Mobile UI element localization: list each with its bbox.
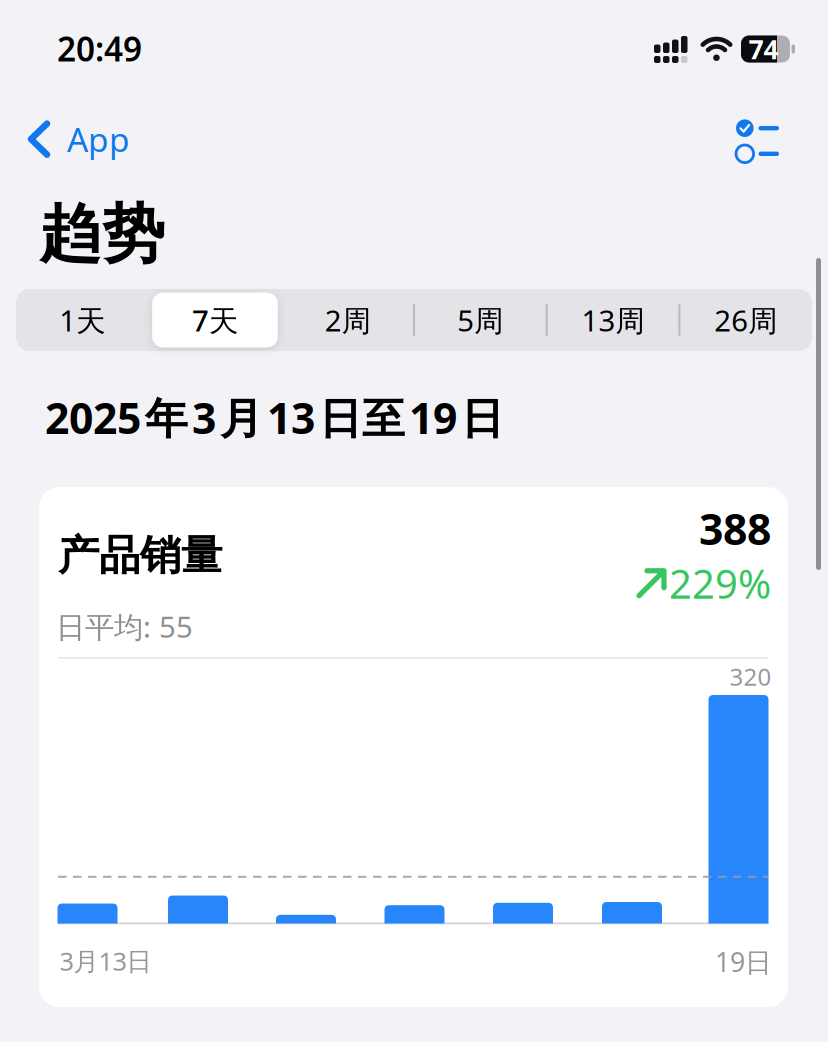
staticText: 388 bbox=[699, 500, 771, 557]
button[interactable]: 7天 bbox=[149, 289, 281, 351]
staticText: 2周 bbox=[325, 300, 371, 339]
staticText: 13周 bbox=[581, 300, 644, 339]
button[interactable]: 2周 bbox=[281, 289, 414, 351]
button[interactable]: 26周 bbox=[679, 289, 812, 351]
button[interactable]: App bbox=[31, 117, 130, 161]
staticText: 7天 bbox=[192, 300, 238, 339]
staticText: 产品销量 bbox=[58, 530, 222, 581]
staticText: 2025 年 3 月 13 日至 19 日 bbox=[45, 389, 504, 446]
staticText: 日平均: 55 bbox=[56, 607, 193, 646]
staticText: 320 bbox=[729, 660, 771, 692]
staticText: 74 bbox=[748, 31, 778, 67]
staticText: 1天 bbox=[59, 300, 105, 339]
staticText: App bbox=[67, 117, 130, 161]
button[interactable]: 筛选指标 bbox=[736, 119, 780, 163]
staticText: 20:49 bbox=[57, 26, 142, 71]
staticText: 19日 bbox=[715, 944, 772, 979]
button[interactable]: 13周 bbox=[547, 289, 679, 351]
staticText: 5周 bbox=[457, 300, 503, 339]
staticText: 3月13日 bbox=[59, 944, 151, 978]
button[interactable]: 1天 bbox=[16, 289, 149, 351]
staticText: 趋势 bbox=[39, 196, 165, 273]
button[interactable]: 5周 bbox=[414, 289, 547, 351]
staticText: 229% bbox=[669, 557, 771, 610]
staticText: 26周 bbox=[714, 300, 777, 339]
